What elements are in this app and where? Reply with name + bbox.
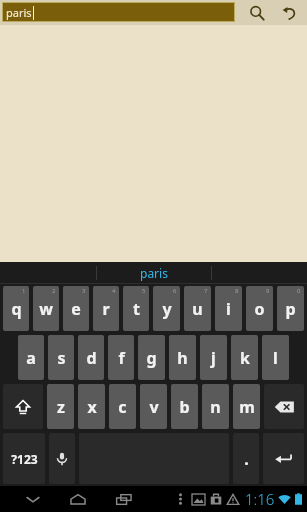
button[interactable]	[212, 262, 307, 284]
button[interactable]: p	[277, 286, 304, 331]
button[interactable]	[0, 262, 96, 284]
staticText: o	[254, 298, 265, 320]
staticText: z	[57, 396, 65, 418]
button[interactable]: q	[3, 286, 29, 331]
staticText: 1	[22, 287, 26, 295]
staticText: 3	[82, 287, 86, 295]
button[interactable]: .	[233, 433, 259, 484]
staticText: ?123	[11, 451, 38, 467]
button[interactable]: ?123	[3, 433, 45, 484]
staticText: 6	[173, 287, 177, 295]
staticText: .	[244, 448, 249, 470]
button[interactable]: h	[169, 335, 196, 380]
button[interactable]: g	[138, 335, 165, 380]
button[interactable]: e	[63, 286, 89, 331]
button[interactable]: Hide keyboard	[18, 486, 48, 512]
button[interactable]: x	[78, 384, 105, 429]
staticText: 9	[266, 287, 270, 295]
staticText: a	[26, 347, 36, 369]
staticText: r	[102, 298, 110, 320]
button[interactable]: v	[140, 384, 167, 429]
staticText: e	[71, 298, 81, 320]
button[interactable]: More options	[173, 486, 187, 512]
button[interactable]: r	[93, 286, 119, 331]
staticText: m	[239, 396, 255, 418]
staticText: g	[146, 347, 157, 369]
button[interactable]: u	[184, 286, 211, 331]
staticText: w	[39, 298, 53, 320]
button[interactable]: i	[215, 286, 242, 331]
staticText: h	[177, 347, 188, 369]
staticText: paris	[140, 265, 168, 281]
staticText: 5	[142, 287, 146, 295]
button[interactable]: w	[33, 286, 59, 331]
staticText: u	[192, 298, 203, 320]
button[interactable]: n	[202, 384, 229, 429]
staticText: n	[210, 396, 221, 418]
button[interactable]: paris	[97, 262, 211, 284]
staticText: j	[211, 347, 216, 369]
button[interactable]: Shift	[3, 384, 43, 429]
button[interactable]: z	[47, 384, 74, 429]
staticText: l	[273, 347, 278, 369]
staticText: i	[226, 298, 231, 320]
staticText: y	[162, 298, 172, 320]
staticText: p	[285, 298, 296, 320]
button[interactable]: d	[78, 335, 104, 380]
staticText: v	[149, 396, 159, 418]
button[interactable]: b	[171, 384, 198, 429]
button[interactable]: paris	[3, 3, 234, 21]
staticText: 7	[204, 287, 208, 295]
button[interactable]: s	[48, 335, 74, 380]
button[interactable]: t	[123, 286, 149, 331]
staticText: 2	[52, 287, 56, 295]
button[interactable]: a	[18, 335, 44, 380]
button[interactable]: f	[108, 335, 134, 380]
button[interactable]: Search	[241, 0, 273, 25]
button[interactable]: y	[153, 286, 180, 331]
staticText: q	[11, 298, 22, 320]
staticText: f	[118, 347, 125, 369]
button[interactable]: k	[231, 335, 258, 380]
button[interactable]: Home	[62, 486, 94, 512]
staticText: paris	[6, 5, 32, 20]
button[interactable]: c	[109, 384, 136, 429]
staticText: 0	[297, 287, 301, 295]
button[interactable]: Delete	[264, 384, 304, 429]
staticText: c	[118, 396, 127, 418]
staticText: d	[86, 347, 97, 369]
button[interactable]: Recent apps	[108, 486, 140, 512]
staticText: x	[87, 396, 97, 418]
staticText: k	[240, 347, 250, 369]
button[interactable]: j	[200, 335, 227, 380]
button[interactable]: l	[262, 335, 289, 380]
staticText: 1:16	[245, 489, 275, 509]
button[interactable]: m	[233, 384, 260, 429]
button[interactable]: Enter	[263, 433, 304, 484]
staticText: 8	[235, 287, 239, 295]
button[interactable]: Voice input	[49, 433, 75, 484]
staticText: b	[179, 396, 190, 418]
button[interactable]: o	[246, 286, 273, 331]
button[interactable]: Back	[273, 0, 307, 25]
staticText: 4	[112, 287, 116, 295]
staticText: t	[133, 298, 140, 320]
staticText: s	[57, 347, 66, 369]
